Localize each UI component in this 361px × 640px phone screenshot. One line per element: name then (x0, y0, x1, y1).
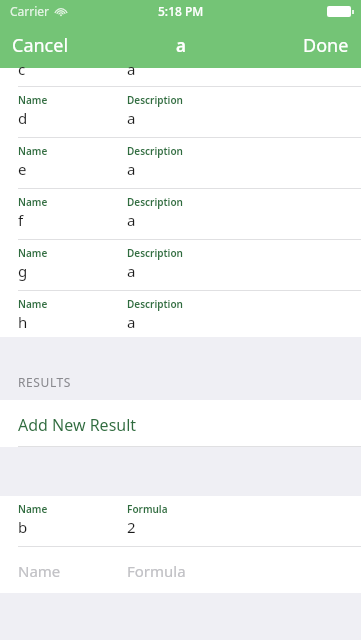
staticText: g (18, 261, 28, 281)
staticText: a (127, 261, 136, 281)
staticText: a (176, 34, 186, 57)
staticText: Description (127, 246, 183, 260)
staticText: Name (18, 502, 48, 516)
button[interactable]: Name (0, 547, 361, 593)
staticText: e (18, 159, 27, 179)
staticText: Name (18, 561, 61, 581)
staticText: Add New Result (18, 414, 137, 436)
staticText: 5:18 PM (158, 3, 204, 19)
button[interactable]: Cancel (0, 25, 81, 66)
staticText: a (127, 210, 136, 230)
staticText: Formula (127, 561, 186, 581)
staticText: Name (18, 144, 48, 158)
staticText: Formula (127, 502, 168, 516)
staticText: RESULTS (18, 374, 72, 390)
staticText: a (127, 312, 136, 332)
staticText: c (18, 59, 26, 77)
staticText: Description (127, 144, 183, 158)
staticText: Name (18, 93, 48, 107)
staticText: h (18, 312, 28, 332)
staticText: Description (127, 93, 183, 107)
staticText: Description (127, 297, 183, 311)
staticText: Done (303, 33, 349, 58)
staticText: d (18, 108, 28, 128)
staticText: f (18, 210, 24, 230)
staticText: Name (18, 297, 48, 311)
staticText: Name (18, 246, 48, 260)
button[interactable]: Done (291, 25, 361, 66)
staticText: Description (127, 195, 183, 209)
staticText: b (18, 517, 28, 537)
button[interactable]: Add New Result (0, 400, 361, 447)
staticText: Name (18, 195, 48, 209)
staticText: 2 (127, 517, 136, 537)
staticText: Carrier (10, 3, 50, 19)
staticText: a (127, 59, 136, 77)
staticText: Cancel (12, 33, 69, 58)
staticText: a (127, 159, 136, 179)
staticText: a (127, 108, 136, 128)
